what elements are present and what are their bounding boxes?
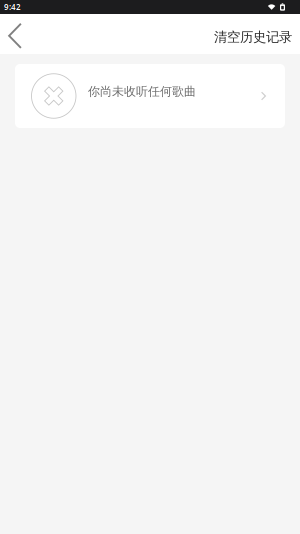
button[interactable]: 你尚未收听任何歌曲 [15, 64, 285, 128]
staticText: 清空历史记录 [214, 29, 292, 45]
button[interactable]: Back [0, 14, 36, 54]
staticText: 9:42 [4, 2, 21, 12]
staticText: 你尚未收听任何歌曲 [88, 84, 196, 99]
button[interactable]: 清空历史记录 [214, 14, 300, 54]
